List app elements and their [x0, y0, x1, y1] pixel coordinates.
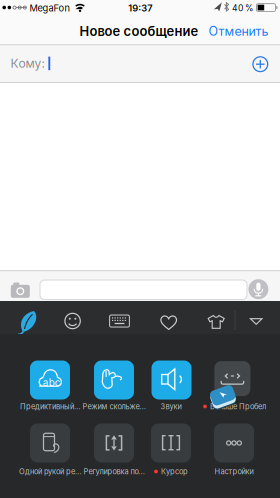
staticText: Отменить — [208, 24, 268, 39]
button[interactable]: Избранное — [160, 315, 178, 331]
staticText: Предиктивный… — [20, 402, 80, 411]
staticText: Режим скольже… — [82, 402, 145, 411]
button[interactable]: Регулировка по высоте — [94, 423, 134, 462]
button[interactable]: Одной рукой режим — [30, 423, 70, 462]
button[interactable]: Камера — [8, 281, 32, 299]
staticText: Одной рукой ре… — [19, 467, 81, 476]
button[interactable]: Отменить — [208, 24, 268, 39]
staticText: MegaFon — [29, 2, 69, 14]
button[interactable]: Больше Пробел — [214, 361, 250, 396]
staticText: Больше Пробел — [210, 402, 266, 411]
button[interactable]: Звуки — [151, 360, 191, 399]
button[interactable]: Swype — [13, 309, 39, 335]
button[interactable]: Эмодзи — [64, 312, 81, 329]
staticText: Новое сообщение — [79, 23, 198, 39]
button[interactable]: Темы — [207, 314, 225, 329]
button[interactable]: Диктовка — [248, 279, 268, 299]
staticText: Звуки — [160, 402, 181, 411]
staticText: Курсор — [161, 467, 188, 476]
button[interactable]: Курсор — [151, 423, 191, 462]
button[interactable]: Режим скольжения — [94, 360, 134, 399]
button[interactable]: Настройки — [214, 423, 254, 462]
staticText: abc — [43, 376, 61, 389]
staticText: Настройки — [214, 467, 253, 476]
staticText: 19:37 — [128, 2, 152, 14]
button[interactable]: Свернуть — [249, 317, 263, 325]
button[interactable]: Добавить контакт — [251, 55, 269, 73]
button[interactable]: Клавиатура — [109, 314, 130, 328]
staticText: Регулировка по… — [83, 467, 144, 476]
staticText: Кому: — [10, 56, 44, 70]
staticText: 40 % — [232, 3, 253, 13]
button[interactable]: Предиктивный ввод — [30, 360, 70, 399]
